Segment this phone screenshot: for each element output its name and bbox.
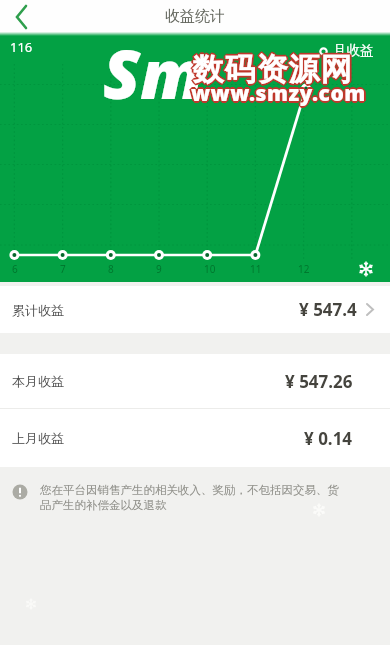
staticText: 累计收益 — [12, 302, 64, 318]
staticText: 8 — [108, 262, 114, 276]
staticText: www.smzy.com — [193, 79, 368, 108]
staticText: 6 — [12, 262, 18, 276]
staticText: 数码资源网 — [193, 51, 353, 90]
staticText: ¥ 547.26 — [285, 370, 353, 393]
button[interactable]: 累计收益 — [0, 286, 390, 333]
staticText: 您在平台因销售产生的相关收入、奖励，不包括因交易、货 品产生的补偿金以及退款 — [40, 483, 339, 513]
staticText: 收益统计 — [165, 7, 225, 26]
staticText: 7 — [60, 262, 66, 276]
staticText: 数码资源网 — [192, 50, 352, 89]
staticText: 数码资源网 — [192, 48, 352, 87]
staticText: 9 — [156, 262, 162, 276]
staticText: Sm — [103, 26, 204, 119]
staticText: 数码资源网 — [192, 52, 352, 91]
staticText: 数码资源网 — [193, 49, 353, 88]
staticText: 数码资源网 — [190, 50, 350, 89]
staticText: 12 — [298, 262, 310, 276]
staticText: www.smzy.com — [191, 81, 366, 110]
staticText: 11 — [250, 262, 262, 276]
staticText: www.smzy.com — [189, 79, 364, 108]
button[interactable]: 本月收益 — [0, 354, 390, 408]
staticText: www.smzy.com — [191, 77, 366, 106]
staticText: www.smzy.com — [192, 80, 367, 109]
staticText: 10 — [204, 262, 216, 276]
button[interactable]: 上月收益 — [0, 409, 390, 467]
staticText: 本月收益 — [12, 373, 64, 389]
staticText: www.smzy.com — [192, 78, 367, 107]
button[interactable] — [0, 1, 44, 32]
staticText: ¥ 547.4 — [299, 298, 357, 321]
staticText: www.smzy.com — [190, 80, 365, 109]
staticText: 数码资源网 — [191, 51, 351, 90]
staticText: 116 — [10, 38, 33, 56]
staticText: 数码资源网 — [191, 49, 351, 88]
staticText: 月收益 — [333, 42, 374, 59]
staticText: 上月收益 — [12, 430, 64, 446]
staticText: www.smzy.com — [190, 78, 365, 107]
staticText: 数码资源网 — [194, 50, 354, 89]
staticText: ¥ 0.14 — [304, 427, 353, 450]
staticText: www.smzy.com — [191, 79, 366, 108]
